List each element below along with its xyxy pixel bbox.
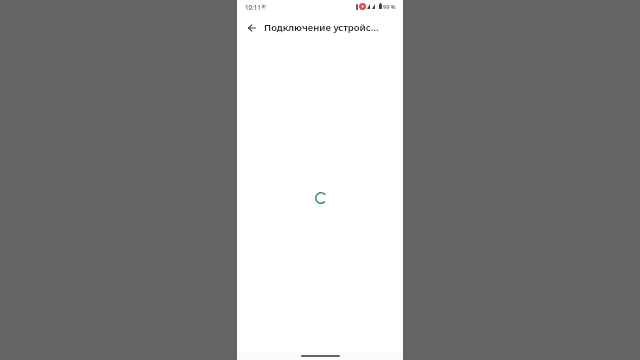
button[interactable]: Home <box>301 355 340 357</box>
button[interactable]: Back <box>240 16 264 40</box>
staticText: 10:11 <box>245 3 261 11</box>
other: Loading <box>315 192 327 204</box>
staticText: 99 % <box>383 3 396 11</box>
staticText: Подключение устройства <box>264 21 380 34</box>
